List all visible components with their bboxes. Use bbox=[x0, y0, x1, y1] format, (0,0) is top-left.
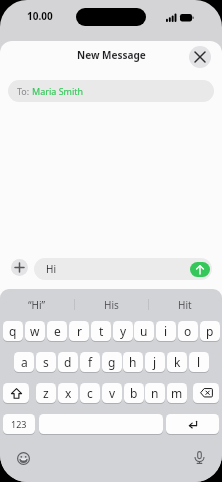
button[interactable]: Hit bbox=[148, 296, 222, 314]
button[interactable]: To: bbox=[8, 80, 214, 102]
staticText: Hit bbox=[178, 298, 192, 312]
staticText: u bbox=[140, 323, 148, 339]
button[interactable]: d bbox=[58, 352, 78, 372]
staticText: t bbox=[99, 323, 104, 339]
staticText: y bbox=[120, 323, 127, 339]
button[interactable]: u bbox=[134, 321, 154, 341]
staticText: m bbox=[171, 385, 183, 401]
button[interactable] bbox=[3, 383, 29, 403]
button[interactable]: a bbox=[14, 352, 34, 372]
staticText: h bbox=[129, 354, 137, 370]
button[interactable] bbox=[166, 414, 219, 434]
button[interactable]: i bbox=[156, 321, 176, 341]
staticText: q bbox=[9, 323, 17, 339]
staticText: 123 bbox=[11, 418, 27, 430]
staticText: To: bbox=[17, 85, 32, 97]
staticText: k bbox=[174, 354, 181, 370]
button[interactable]: r bbox=[69, 321, 89, 341]
button[interactable]: j bbox=[145, 352, 165, 372]
staticText: o bbox=[184, 323, 192, 339]
button[interactable]: y bbox=[113, 321, 133, 341]
staticText: g bbox=[108, 354, 116, 370]
button[interactable]: l bbox=[189, 352, 209, 372]
button[interactable]: g bbox=[102, 352, 122, 372]
button[interactable] bbox=[190, 448, 208, 466]
button[interactable]: n bbox=[145, 383, 165, 403]
button[interactable]: v bbox=[102, 383, 122, 403]
button[interactable]: o bbox=[178, 321, 198, 341]
staticText: s bbox=[43, 354, 49, 370]
button[interactable]: “Hi” bbox=[0, 296, 74, 314]
staticText: f bbox=[88, 354, 93, 370]
button[interactable]: 123 bbox=[3, 414, 35, 434]
button[interactable]: b bbox=[124, 383, 144, 403]
staticText: 10.00 bbox=[27, 9, 53, 23]
staticText: a bbox=[21, 354, 28, 370]
button[interactable] bbox=[39, 414, 163, 434]
staticText: d bbox=[64, 354, 72, 370]
staticText: Hi bbox=[46, 262, 56, 276]
button[interactable]: His bbox=[74, 296, 148, 314]
staticText: p bbox=[206, 323, 214, 339]
button[interactable]: p bbox=[200, 321, 220, 341]
button[interactable]: m bbox=[167, 383, 187, 403]
button[interactable]: z bbox=[36, 383, 56, 403]
staticText: v bbox=[109, 385, 116, 401]
staticText: New Message bbox=[77, 48, 146, 62]
button[interactable]: x bbox=[58, 383, 78, 403]
staticText: i bbox=[164, 323, 168, 339]
staticText: c bbox=[87, 385, 93, 401]
staticText: e bbox=[54, 323, 61, 339]
button[interactable]: q bbox=[3, 321, 23, 341]
button[interactable]: e bbox=[47, 321, 67, 341]
button[interactable]: Hi bbox=[34, 258, 212, 280]
staticText: “Hi” bbox=[28, 298, 46, 312]
staticText: x bbox=[65, 385, 72, 401]
button[interactable]: k bbox=[167, 352, 187, 372]
staticText: r bbox=[77, 323, 82, 339]
button[interactable]: s bbox=[36, 352, 56, 372]
staticText: His bbox=[104, 298, 119, 312]
button[interactable] bbox=[193, 383, 219, 403]
staticText: w bbox=[30, 323, 40, 339]
button[interactable] bbox=[190, 262, 210, 277]
staticText: n bbox=[151, 385, 159, 401]
staticText: z bbox=[43, 385, 49, 401]
button[interactable]: t bbox=[91, 321, 111, 341]
button[interactable]: f bbox=[80, 352, 100, 372]
button[interactable] bbox=[17, 452, 30, 465]
button[interactable] bbox=[189, 46, 211, 68]
staticText: j bbox=[153, 354, 157, 370]
button[interactable]: c bbox=[80, 383, 100, 403]
button[interactable] bbox=[11, 259, 28, 276]
staticText: b bbox=[130, 385, 138, 401]
button[interactable]: w bbox=[25, 321, 45, 341]
staticText: l bbox=[197, 354, 201, 370]
staticText: Maria Smith bbox=[32, 85, 84, 97]
button[interactable]: h bbox=[123, 352, 143, 372]
